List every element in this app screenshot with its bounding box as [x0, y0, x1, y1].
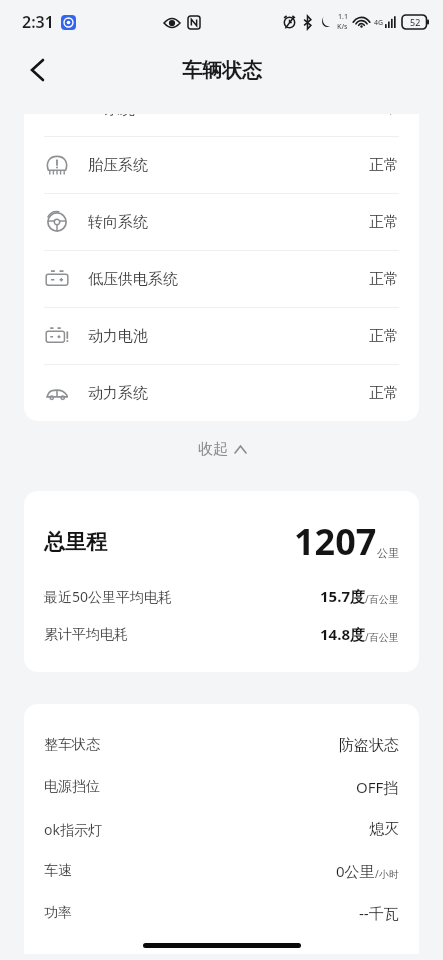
staticText: /百公里 [365, 592, 399, 606]
staticText: 正常 [369, 270, 399, 289]
staticText: 0公里 [336, 861, 375, 881]
staticText: K/s [337, 22, 348, 32]
button[interactable]: Back [14, 47, 60, 93]
staticText: 动力系统 [88, 384, 148, 403]
staticText: 正常 [369, 213, 399, 232]
staticText: 累计平均电耗 [44, 626, 128, 644]
button[interactable]: 胎压系统 [24, 137, 419, 193]
button[interactable]: 电源挡位 [44, 766, 399, 808]
staticText: 功率 [44, 904, 72, 922]
staticText: 整车状态 [44, 736, 100, 754]
staticText: 动力电池 [88, 327, 148, 346]
button[interactable]: 动力电池 [24, 308, 419, 364]
staticText: 15.7度 [320, 586, 365, 606]
staticText: 2:31 [22, 11, 54, 33]
staticText: 正常 [369, 156, 399, 175]
button[interactable]: 最近50公里平均电耗 [44, 586, 399, 606]
staticText: 1.1 [338, 12, 348, 22]
staticText: OFF挡 [356, 777, 399, 797]
button[interactable]: 收起 [0, 421, 443, 477]
staticText: 正常 [369, 327, 399, 346]
staticText: 4G [374, 18, 384, 28]
staticText: /百公里 [365, 630, 399, 644]
staticText: ok指示灯 [44, 820, 102, 839]
button[interactable]: 功率 [44, 892, 399, 934]
button[interactable]: 转向系统 [24, 194, 419, 250]
staticText: 收起 [198, 440, 228, 459]
staticText: SRS系统 [79, 114, 135, 118]
staticText: /小时 [375, 867, 399, 881]
button[interactable]: 车速 [44, 850, 399, 892]
staticText: 电源挡位 [44, 778, 100, 796]
staticText: 转向系统 [88, 213, 148, 232]
staticText: 1207 [294, 517, 377, 566]
staticText: 车辆状态 [182, 58, 262, 83]
staticText: 52 [410, 16, 421, 28]
button[interactable]: 累计平均电耗 [44, 624, 399, 644]
button[interactable]: 动力系统 [24, 365, 419, 421]
staticText: 最近50公里平均电耗 [44, 587, 173, 606]
staticText: 低压供电系统 [88, 270, 178, 289]
staticText: 14.8度 [320, 624, 365, 644]
staticText: 总里程 [44, 529, 107, 555]
staticText: 胎压系统 [88, 156, 148, 175]
staticText: 正常 [369, 384, 399, 403]
button[interactable]: 低压供电系统 [24, 251, 419, 307]
button[interactable]: ok指示灯 [44, 808, 399, 850]
staticText: 防盗状态 [339, 736, 399, 755]
staticText: 公里 [377, 546, 399, 560]
staticText: 车速 [44, 862, 72, 880]
staticText: 熄灭 [369, 820, 399, 839]
button[interactable]: 整车状态 [44, 724, 399, 766]
staticText: 正常 [369, 114, 399, 118]
staticText: --千瓦 [359, 903, 399, 923]
